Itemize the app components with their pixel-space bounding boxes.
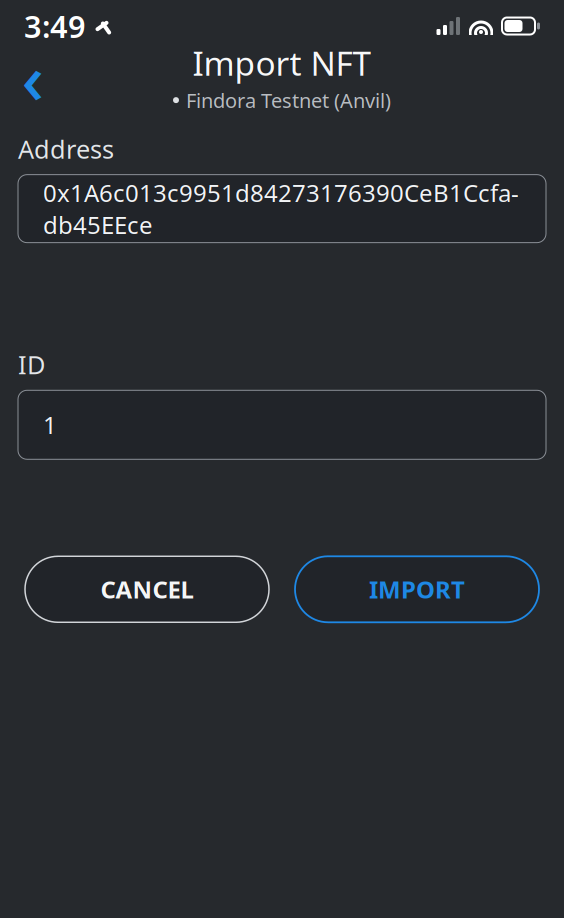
staticText: ID bbox=[18, 348, 45, 381]
staticText: 0x1A6c013c9951d84273176390CeB1Ccfadb45EE… bbox=[43, 177, 519, 240]
button[interactable]: IMPORT bbox=[295, 556, 539, 622]
button[interactable]: CANCEL bbox=[25, 556, 269, 622]
staticText: ‹ bbox=[21, 31, 44, 123]
button[interactable]: Back bbox=[8, 52, 58, 102]
staticText: 3:49 bbox=[24, 6, 86, 46]
staticText: CANCEL bbox=[100, 573, 193, 605]
staticText: Findora Testnet (Anvil) bbox=[186, 87, 391, 113]
staticText: 1 bbox=[43, 409, 57, 441]
staticText: Address bbox=[18, 132, 114, 166]
staticText: IMPORT bbox=[369, 573, 465, 605]
staticText: Import NFT bbox=[192, 41, 371, 85]
